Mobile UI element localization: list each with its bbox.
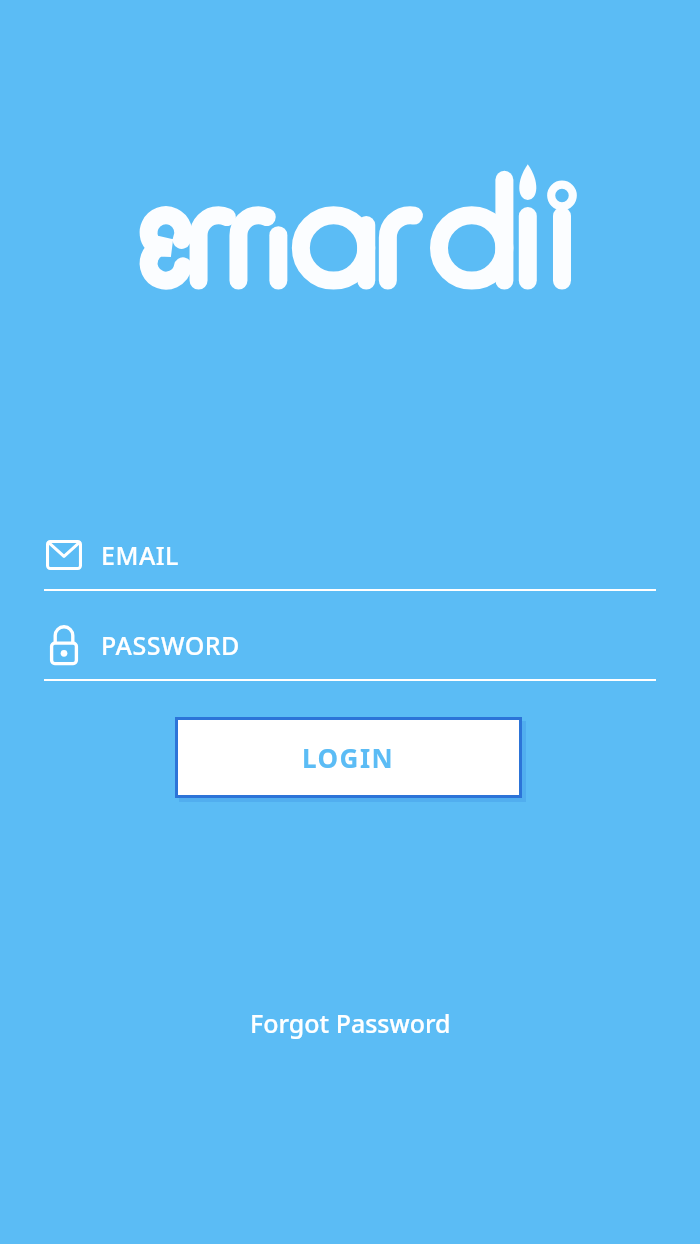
button[interactable]: LOGIN bbox=[175, 717, 522, 798]
staticText: Forgot Password bbox=[250, 1006, 451, 1040]
button[interactable]: Email bbox=[44, 527, 656, 591]
staticText: LOGIN bbox=[302, 740, 395, 775]
staticText: PASSWORD bbox=[101, 628, 240, 662]
other: Email bbox=[44, 532, 84, 578]
other: Password bbox=[44, 622, 84, 668]
button[interactable]: Password bbox=[44, 617, 656, 681]
staticText: EMAIL bbox=[101, 538, 179, 572]
button[interactable]: Forgot Password bbox=[232, 1000, 469, 1046]
